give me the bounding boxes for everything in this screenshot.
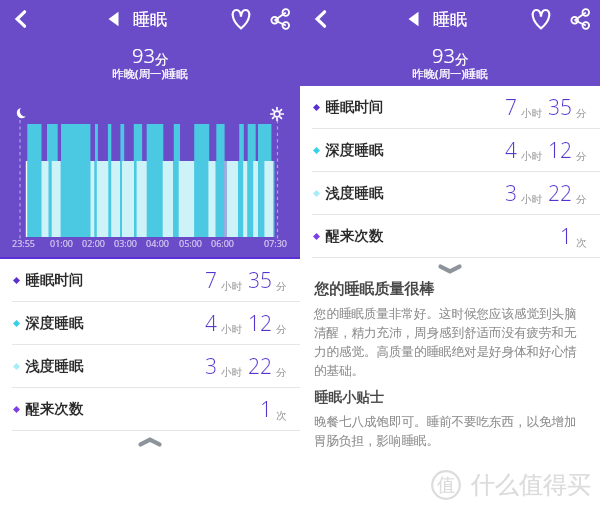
button[interactable]: Share	[567, 6, 593, 32]
staticText: 分	[276, 323, 287, 336]
staticText: 睡眠	[433, 9, 467, 30]
button[interactable]: Share	[267, 6, 293, 32]
button[interactable]: Favorite	[528, 6, 554, 32]
staticText: 分	[576, 193, 587, 206]
button[interactable]: Expand	[138, 437, 162, 447]
staticText: 小时	[221, 366, 242, 379]
staticText: 分	[276, 366, 287, 379]
staticText: 12	[248, 309, 272, 338]
staticText: 昨晚(周一)睡眠	[112, 66, 188, 82]
button[interactable]: Previous day	[404, 8, 424, 30]
staticText: 分	[155, 51, 169, 68]
staticText: 醒来次数	[325, 227, 383, 245]
staticText: 07:30	[264, 237, 288, 249]
staticText: 93	[132, 42, 155, 69]
staticText: 分	[455, 51, 469, 68]
staticText: 01:00	[50, 237, 74, 249]
staticText: 7	[205, 266, 217, 295]
staticText: 睡眠	[133, 9, 167, 30]
staticText: 22	[548, 179, 572, 208]
staticText: 4	[505, 136, 517, 165]
staticText: 深度睡眠	[325, 141, 383, 159]
button[interactable]: 睡眠时间	[0, 259, 300, 301]
staticText: 分	[576, 150, 587, 163]
staticText: 浅度睡眠	[325, 184, 383, 202]
staticText: 05:00	[179, 237, 203, 249]
staticText: 深度睡眠	[25, 314, 83, 332]
staticText: 7	[505, 93, 517, 122]
staticText: 睡眠小贴士	[314, 389, 384, 407]
button[interactable]: 浅度睡眠	[0, 345, 300, 387]
staticText: 浅度睡眠	[25, 357, 83, 375]
staticText: 小时	[521, 107, 542, 120]
staticText: 22	[248, 352, 272, 381]
staticText: 小时	[521, 150, 542, 163]
staticText: 93	[432, 42, 455, 69]
staticText: 睡眠时间	[325, 98, 383, 116]
staticText: 1	[560, 222, 572, 251]
staticText: 次	[276, 409, 287, 422]
staticText: 值	[437, 474, 455, 497]
staticText: 23:55	[12, 237, 36, 249]
staticText: 35	[548, 93, 572, 122]
staticText: 04:00	[146, 237, 170, 249]
staticText: 睡眠时间	[25, 271, 83, 289]
staticText: 02:00	[82, 237, 106, 249]
button[interactable]: Collapse	[438, 264, 462, 274]
staticText: 您的睡眠质量非常好。这时候您应该感觉到头脑清醒，精力充沛，周身感到舒适而没有疲劳…	[314, 306, 584, 379]
staticText: 昨晚(周一)睡眠	[412, 66, 488, 82]
staticText: 晚餐七八成饱即可。睡前不要吃东西，以免增加胃肠负担，影响睡眠。	[314, 414, 584, 449]
staticText: 4	[205, 309, 217, 338]
staticText: 3	[205, 352, 217, 381]
staticText: 次	[576, 236, 587, 249]
button[interactable]: Back	[308, 6, 334, 32]
button[interactable]: 醒来次数	[0, 388, 300, 430]
button[interactable]: 醒来次数	[300, 215, 600, 257]
button[interactable]: 睡眠时间	[300, 86, 600, 128]
button[interactable]: Back	[8, 6, 34, 32]
staticText: 什么值得买	[471, 470, 591, 500]
button[interactable]: 深度睡眠	[0, 302, 300, 344]
staticText: 小时	[221, 323, 242, 336]
staticText: 1	[260, 395, 272, 424]
staticText: 06:00	[211, 237, 235, 249]
staticText: 分	[576, 107, 587, 120]
staticText: 小时	[521, 193, 542, 206]
button[interactable]: 浅度睡眠	[300, 172, 600, 214]
button[interactable]: Previous day	[104, 8, 124, 30]
staticText: 小时	[221, 280, 242, 293]
staticText: 3	[505, 179, 517, 208]
staticText: 35	[248, 266, 272, 295]
button[interactable]: Favorite	[228, 6, 254, 32]
staticText: 分	[276, 280, 287, 293]
staticText: 12	[548, 136, 572, 165]
staticText: 您的睡眠质量很棒	[314, 280, 434, 299]
button[interactable]: 深度睡眠	[300, 129, 600, 171]
staticText: 醒来次数	[25, 400, 83, 418]
staticText: 03:00	[114, 237, 138, 249]
